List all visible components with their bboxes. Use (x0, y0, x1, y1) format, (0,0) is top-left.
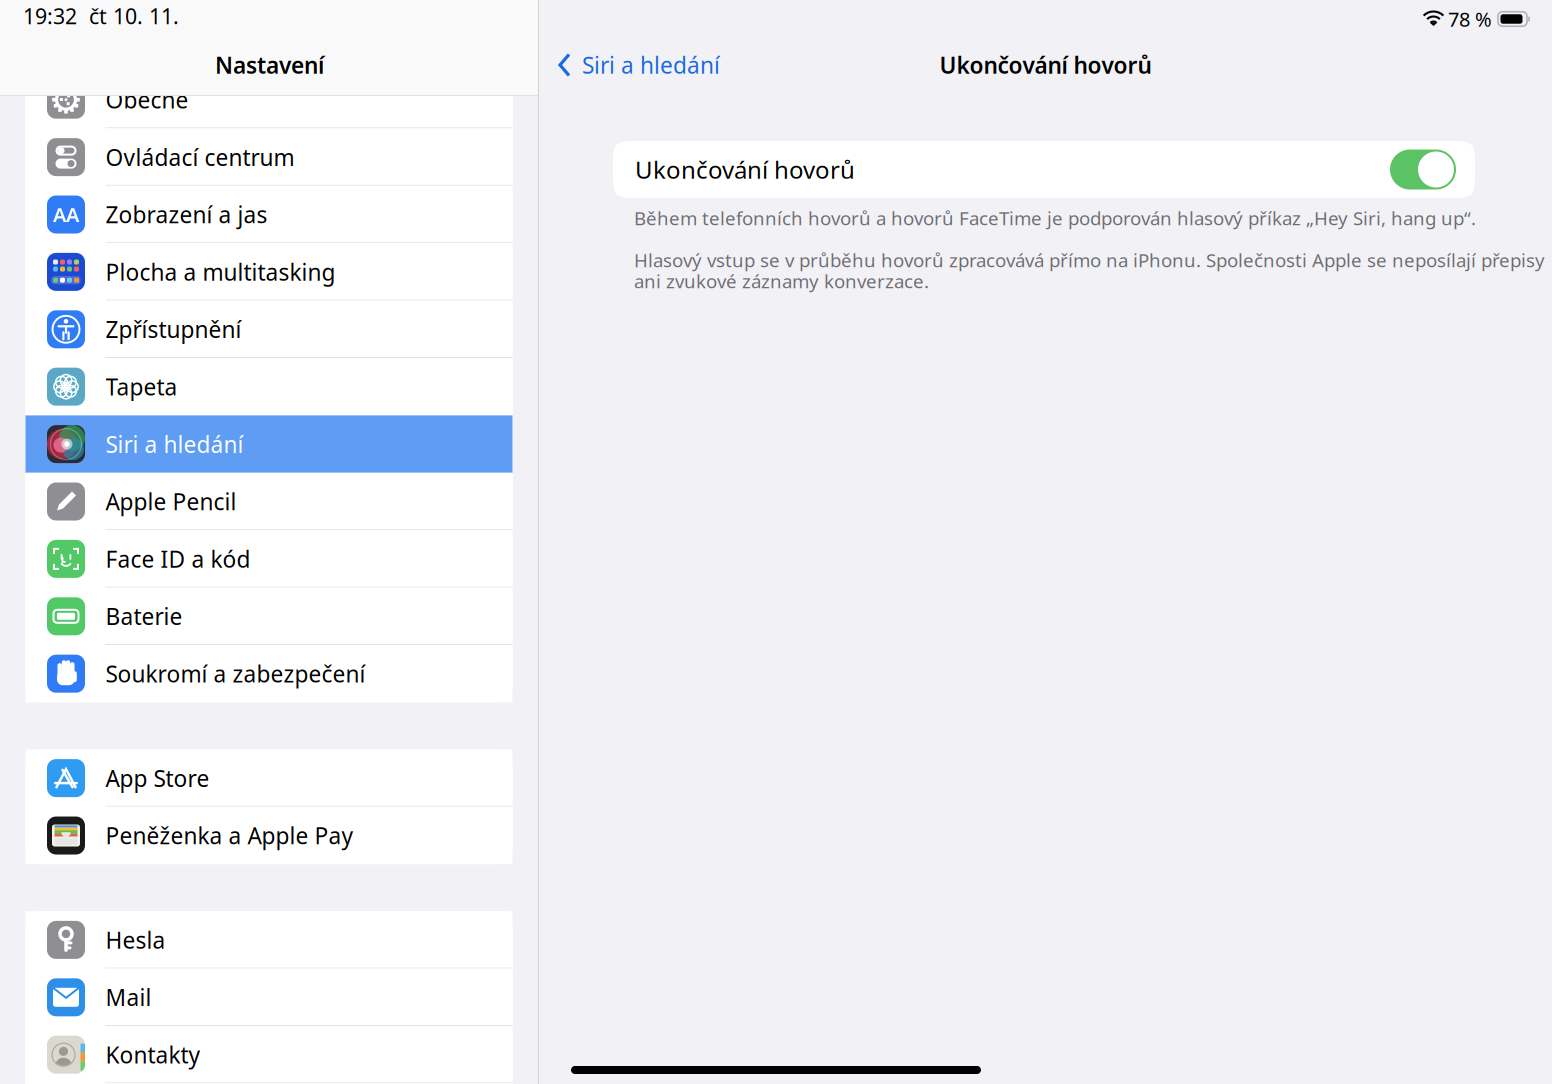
button[interactable]: Kontakty (25, 1026, 512, 1083)
button[interactable]: Obecné (25, 71, 512, 128)
button[interactable]: Tapeta (25, 358, 512, 415)
staticText: Face ID a kód (105, 544, 250, 574)
staticText: Nastavení (215, 50, 324, 80)
staticText: Tapeta (105, 372, 177, 402)
staticText: Ovládací centrum (105, 142, 294, 172)
button[interactable]: Plocha a multitasking (25, 243, 512, 301)
button[interactable]: Ukončování hovorů (613, 141, 1475, 198)
staticText: 78 % (1448, 6, 1492, 32)
staticText: ani zvukové záznamy konverzace. (634, 269, 929, 293)
button[interactable]: Siri a hledání (25, 415, 512, 473)
staticText: Zpřístupnění (105, 314, 241, 344)
button[interactable]: Zpřístupnění (25, 301, 512, 358)
staticText: Siri a hledání (582, 50, 720, 80)
staticText: Hesla (105, 925, 165, 955)
button[interactable]: Siri a hledání (539, 38, 720, 92)
button[interactable]: Ovládací centrum (25, 128, 512, 186)
staticText: Baterie (105, 601, 182, 631)
staticText: 19:32 (23, 2, 77, 30)
button[interactable]: Mail (25, 969, 512, 1026)
staticText: AA (53, 201, 79, 228)
staticText: App Store (105, 763, 209, 793)
button[interactable]: Baterie (25, 588, 512, 645)
button[interactable]: App Store (25, 749, 512, 807)
button[interactable]: Hesla (25, 911, 512, 969)
staticText: Ukončování hovorů (635, 154, 855, 185)
staticText: Obecné (105, 85, 188, 115)
button[interactable]: Soukromí a zabezpečení (25, 645, 512, 702)
staticText: Hlasový vstup se v průběhu hovorů zpraco… (634, 248, 1545, 272)
staticText: Plocha a multitasking (105, 257, 335, 287)
staticText: Apple Pencil (105, 486, 236, 516)
staticText: Zobrazení a jas (105, 199, 267, 229)
button[interactable]: AA (25, 186, 512, 243)
staticText: Soukromí a zabezpečení (105, 659, 365, 689)
button[interactable]: Peněženka a Apple Pay (25, 807, 512, 864)
button[interactable]: Face ID a kód (25, 530, 512, 588)
staticText: Kontakty (105, 1040, 200, 1070)
staticText: Peněženka a Apple Pay (105, 820, 353, 850)
staticText: čt 10. 11. (89, 2, 179, 30)
staticText: Mail (105, 982, 151, 1012)
staticText: Ukončování hovorů (939, 50, 1151, 80)
staticText: Siri a hledání (105, 429, 243, 459)
button[interactable]: Apple Pencil (25, 473, 512, 530)
staticText: Během telefonních hovorů a hovorů FaceTi… (634, 206, 1476, 230)
